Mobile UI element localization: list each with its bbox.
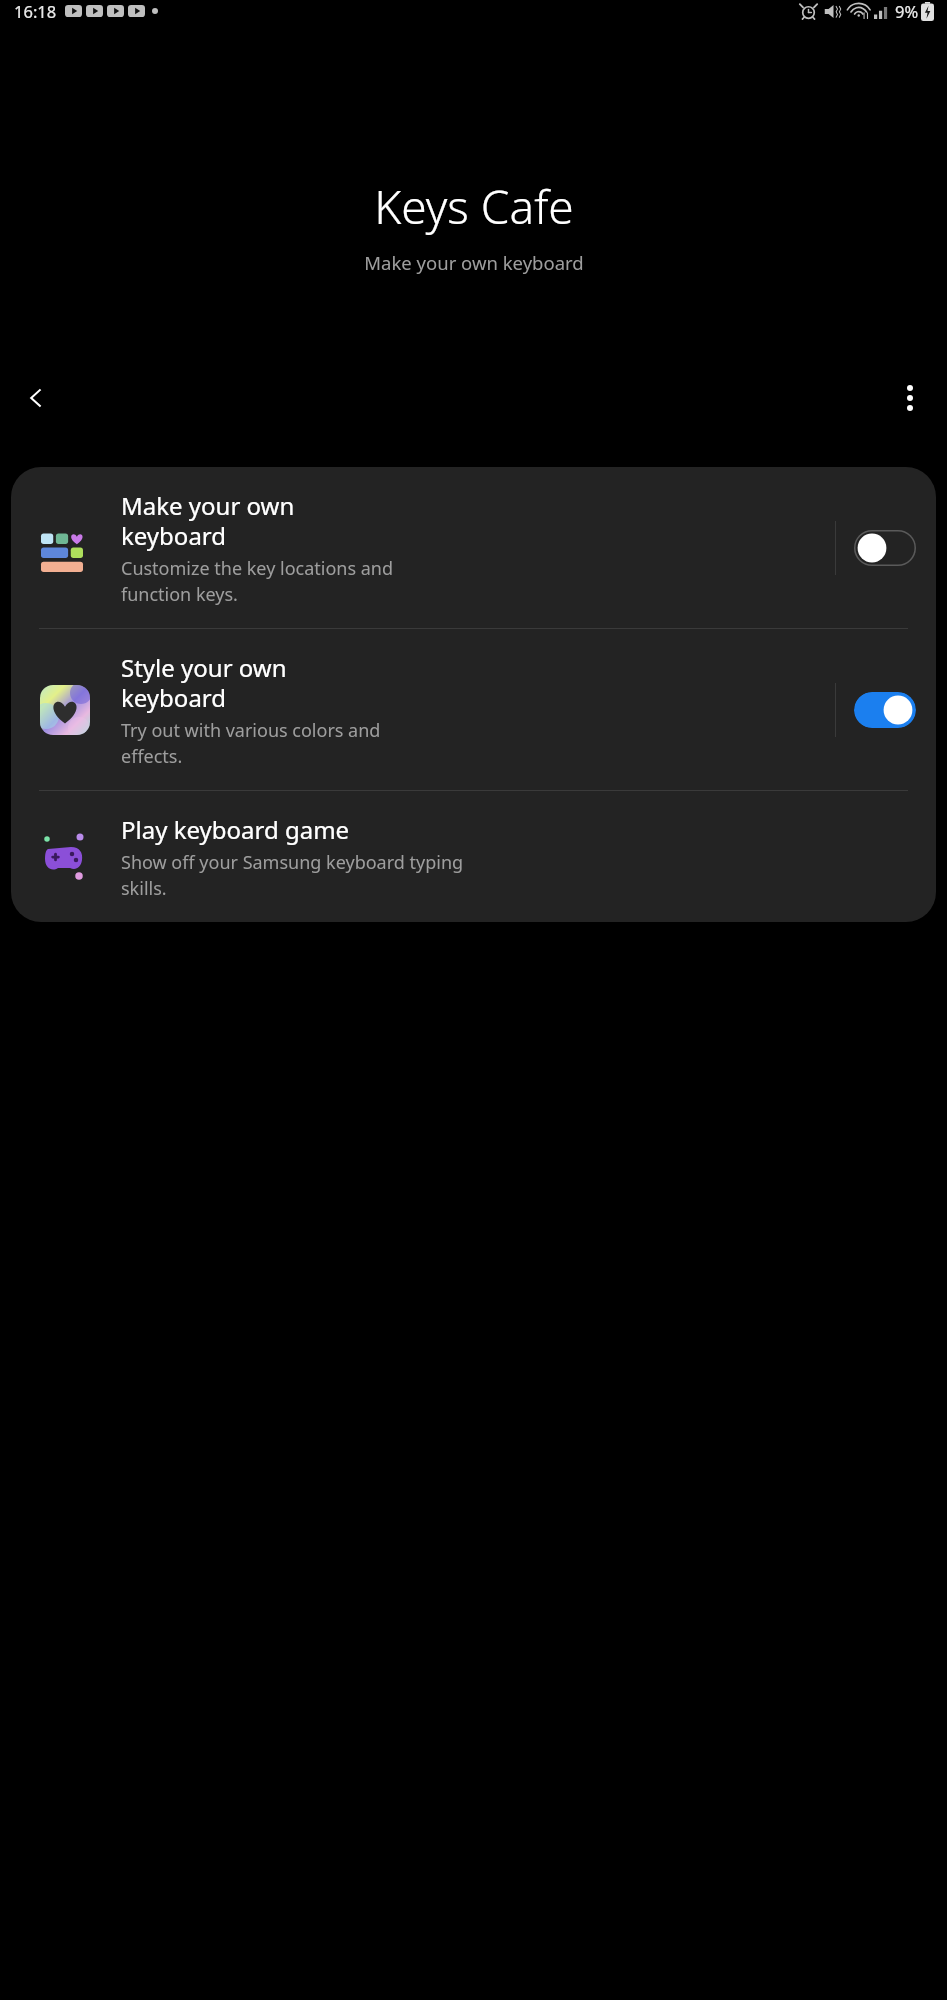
staticText: Make your own keyboard	[121, 489, 295, 552]
staticText: Try out with various colors and effects.	[121, 718, 381, 768]
button[interactable]: Off	[854, 530, 916, 566]
staticText: 9%	[895, 0, 919, 22]
staticText: Style your own keyboard	[121, 651, 287, 714]
button[interactable]: Back	[8, 370, 64, 426]
staticText: Play keyboard game	[121, 813, 350, 846]
button[interactable]: Make your own keyboard	[11, 467, 936, 628]
staticText: Customize the key locations and function…	[121, 556, 394, 606]
staticText: Make your own keyboard	[364, 250, 584, 275]
button[interactable]: More options	[882, 370, 938, 426]
button[interactable]: On	[854, 692, 916, 728]
staticText: 16:18	[14, 0, 57, 22]
staticText: Show off your Samsung keyboard typing sk…	[121, 850, 464, 900]
button[interactable]: Style your own keyboard	[11, 629, 936, 790]
button[interactable]: Play keyboard game	[11, 791, 936, 922]
staticText: Keys Cafe	[374, 175, 574, 238]
